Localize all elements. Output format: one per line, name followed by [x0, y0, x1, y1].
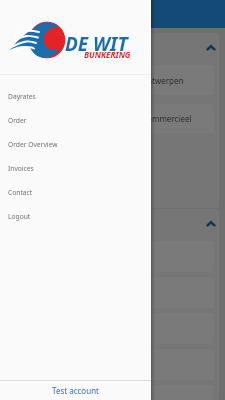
staticText: Logout — [8, 212, 31, 221]
staticText: BUNKERING — [84, 49, 131, 60]
button[interactable] — [11, 277, 214, 308]
button[interactable]: Antwerpen — [11, 65, 214, 95]
staticText: Antwerpen — [142, 75, 184, 86]
button[interactable]: Commercieel — [11, 104, 214, 133]
button[interactable]: Dayrates — [0, 84, 151, 108]
button[interactable]: Order — [0, 108, 151, 132]
button[interactable]: Contact — [0, 180, 151, 204]
staticText: Order — [8, 116, 27, 125]
staticText: Contact — [8, 188, 33, 197]
staticText: DE WIT — [65, 31, 128, 57]
button[interactable]: Collapse order — [202, 214, 219, 232]
button[interactable]: Logout — [0, 204, 151, 228]
staticText: Commercieel — [142, 113, 192, 124]
staticText: Test account — [52, 385, 99, 396]
button[interactable]: Collapse details — [202, 38, 219, 56]
button[interactable] — [11, 385, 214, 400]
button[interactable]: Invoices — [0, 156, 151, 180]
button[interactable] — [11, 241, 214, 272]
staticText: Order Overview — [8, 140, 58, 149]
staticText: Invoices — [8, 164, 34, 173]
button[interactable]: Test account — [0, 381, 151, 400]
button[interactable] — [11, 313, 214, 344]
button[interactable]: Order Overview — [0, 132, 151, 156]
staticText: Dayrates — [8, 92, 36, 101]
button[interactable] — [11, 349, 214, 380]
